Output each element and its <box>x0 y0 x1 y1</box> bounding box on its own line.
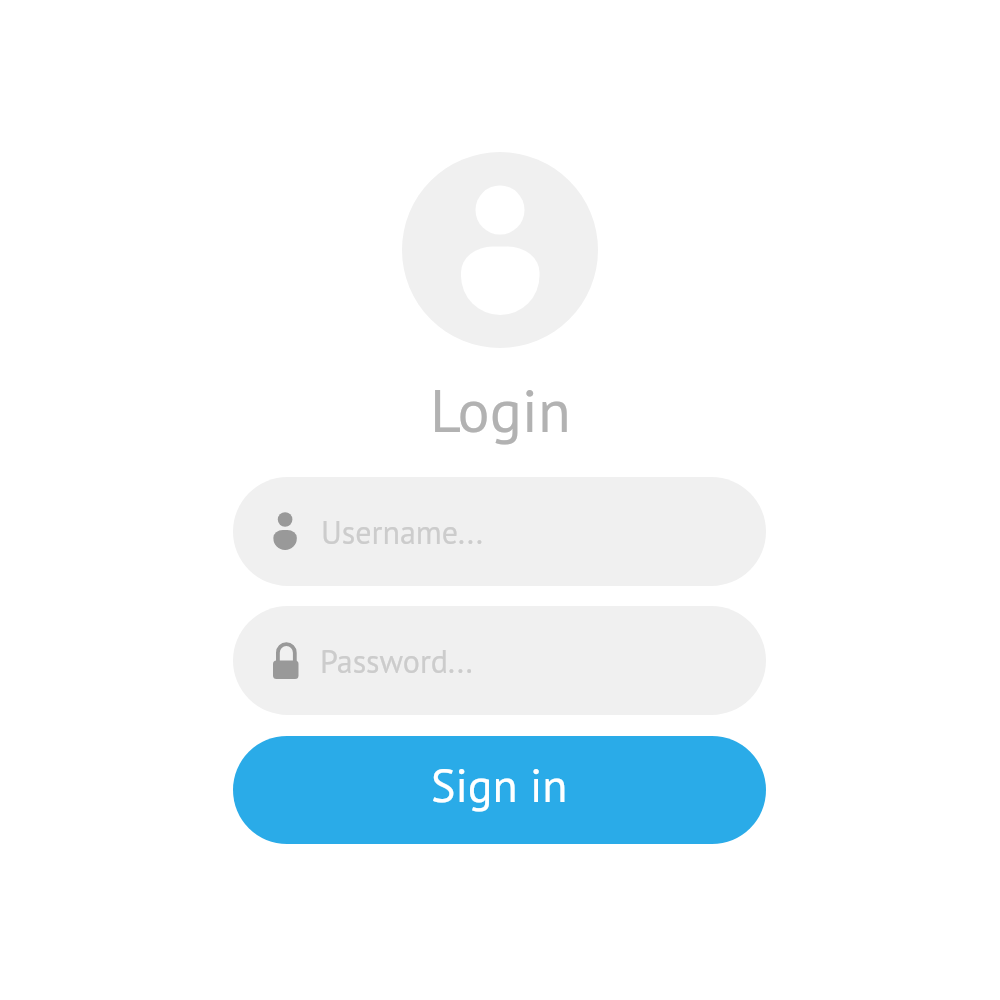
staticText: Login <box>430 371 571 449</box>
staticText: Sign in <box>431 755 568 815</box>
staticText: Password... <box>320 640 473 681</box>
staticText: Username... <box>321 511 483 552</box>
other: Password <box>273 641 299 681</box>
button[interactable]: Username <box>233 477 766 586</box>
button[interactable]: Password <box>233 606 766 715</box>
other: Username <box>273 512 299 552</box>
button[interactable]: Sign in <box>233 736 766 844</box>
